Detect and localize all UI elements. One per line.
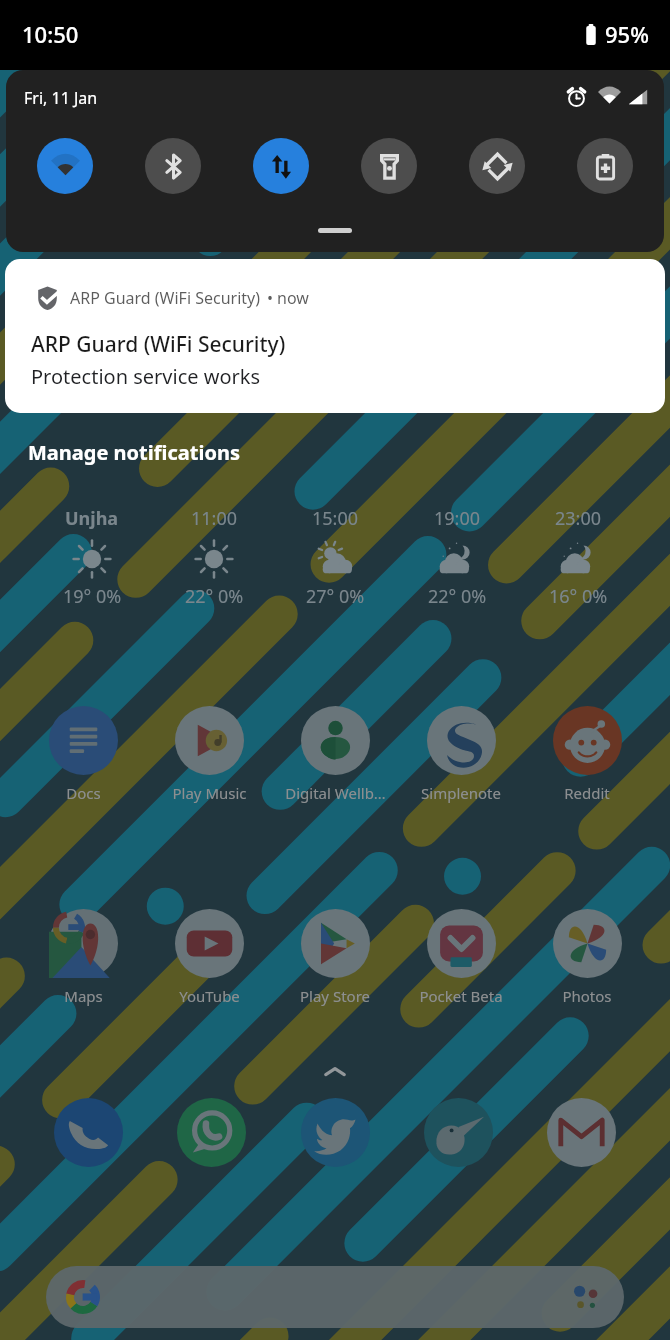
button[interactable]: Maps (20, 909, 146, 1006)
staticText: 23:00 (555, 506, 602, 531)
staticText: ARP Guard (WiFi Security) • now (70, 287, 309, 309)
staticText: Digital Wellb… (285, 783, 386, 803)
staticText: 27° 0% (306, 584, 365, 609)
staticText: 15:00 (312, 506, 359, 531)
staticText: 22° 0% (185, 584, 244, 609)
staticText: 19° 0% (63, 584, 122, 609)
button[interactable]: Phone (54, 1098, 123, 1167)
staticText: Protection service works (31, 363, 261, 390)
button[interactable]: Photos (524, 909, 650, 1006)
button[interactable]: Docs (20, 706, 146, 803)
button[interactable]: Battery saver (577, 138, 633, 194)
staticText: Photos (562, 986, 612, 1006)
staticText: 19:00 (434, 506, 481, 531)
button[interactable]: WhatsApp (177, 1098, 246, 1167)
staticText: Simplenote (421, 783, 501, 803)
button[interactable]: ARP Guard (WiFi Security) • now (5, 259, 665, 413)
button[interactable]: Digital Wellb… (272, 706, 398, 803)
staticText: Pocket Beta (419, 986, 503, 1006)
staticText: Reddit (564, 783, 610, 803)
button[interactable]: Play Store (272, 909, 398, 1006)
button[interactable]: Bluetooth (145, 138, 201, 194)
button[interactable]: Mobile data (253, 138, 309, 194)
staticText: Docs (66, 783, 101, 803)
staticText: 10:50 (22, 19, 79, 49)
button[interactable]: Search (46, 1266, 624, 1328)
button[interactable]: YouTube (146, 909, 272, 1006)
button[interactable]: Gmail (547, 1098, 616, 1167)
button[interactable]: Manage notifications (28, 439, 240, 466)
staticText: 22° 0% (428, 584, 487, 609)
button[interactable]: Reddit (524, 706, 650, 803)
button[interactable]: Pocket Beta (398, 909, 524, 1006)
button[interactable]: Twitter (301, 1098, 370, 1167)
staticText: Play Store (300, 986, 370, 1006)
button[interactable]: Unjha (32, 506, 638, 609)
staticText: Maps (64, 986, 103, 1006)
button[interactable]: Play Music (146, 706, 272, 803)
staticText: YouTube (179, 986, 240, 1006)
button[interactable]: Expand quick settings (318, 228, 352, 233)
staticText: Unjha (65, 506, 119, 531)
button[interactable]: Wi-Fi (37, 138, 93, 194)
staticText: ARP Guard (WiFi Security) (31, 330, 286, 359)
staticText: 11:00 (191, 506, 238, 531)
staticText: Manage notifications (28, 439, 240, 466)
staticText: Play Music (172, 783, 247, 803)
staticText: 16° 0% (549, 584, 608, 609)
button[interactable]: Auto-rotate (469, 138, 525, 194)
staticText: 95% (605, 19, 649, 49)
button[interactable]: Kiwi Browser (424, 1098, 493, 1167)
button[interactable]: Flashlight (361, 138, 417, 194)
button[interactable]: Simplenote (398, 706, 524, 803)
staticText: Fri, 11 Jan (24, 87, 98, 109)
